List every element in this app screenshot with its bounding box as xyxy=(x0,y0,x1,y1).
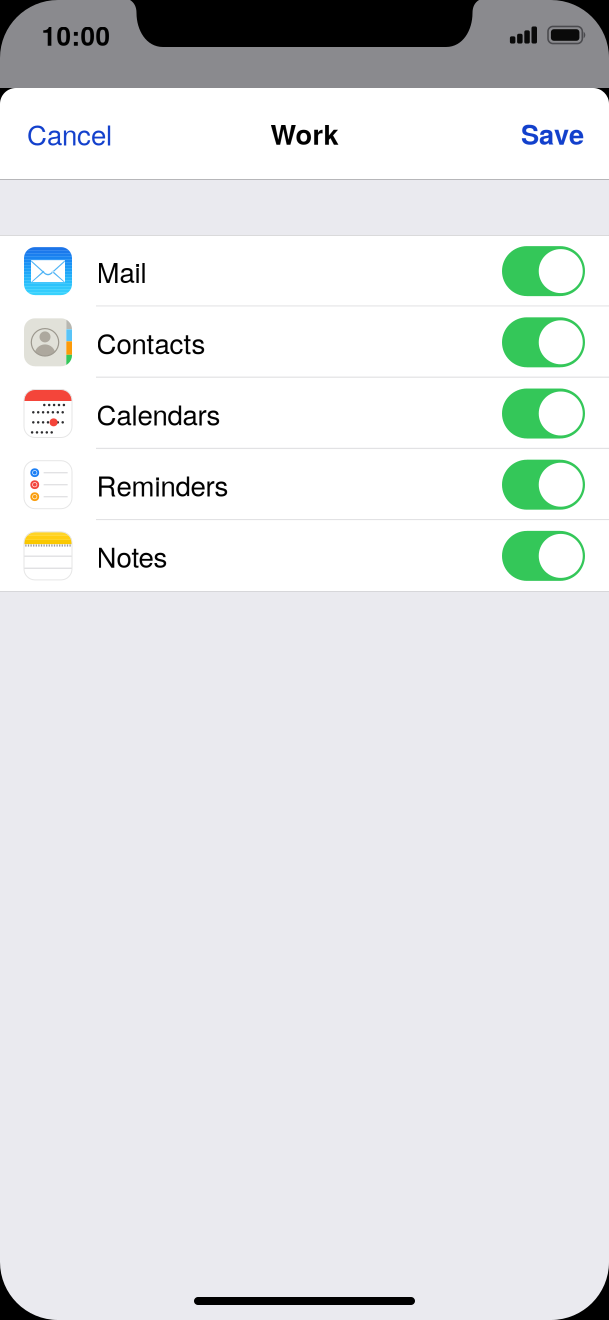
button[interactable]: Mail xyxy=(0,235,609,307)
button[interactable]: Reminders xyxy=(0,449,609,520)
button[interactable]: Calendars xyxy=(0,378,609,449)
staticText: Save xyxy=(521,114,584,153)
staticText: Contacts xyxy=(96,322,205,362)
staticText: Reminders xyxy=(96,465,228,504)
staticText: Calendars xyxy=(96,394,220,433)
button[interactable]: Notes xyxy=(0,520,609,591)
button[interactable]: Calendars toggle xyxy=(502,388,585,438)
staticText: Cancel xyxy=(27,114,112,153)
button[interactable]: Mail toggle xyxy=(502,246,585,296)
staticText: Mail xyxy=(96,251,146,291)
button[interactable]: Cancel xyxy=(0,98,128,169)
button[interactable]: Reminders toggle xyxy=(502,460,585,510)
button[interactable]: Contacts xyxy=(0,307,609,378)
button[interactable]: Contacts toggle xyxy=(502,317,585,367)
staticText: Notes xyxy=(96,536,167,576)
button[interactable]: Notes toggle xyxy=(502,531,585,581)
button[interactable]: Save xyxy=(505,98,609,169)
staticText: 10:00 xyxy=(41,16,110,54)
staticText: Work xyxy=(270,114,338,153)
